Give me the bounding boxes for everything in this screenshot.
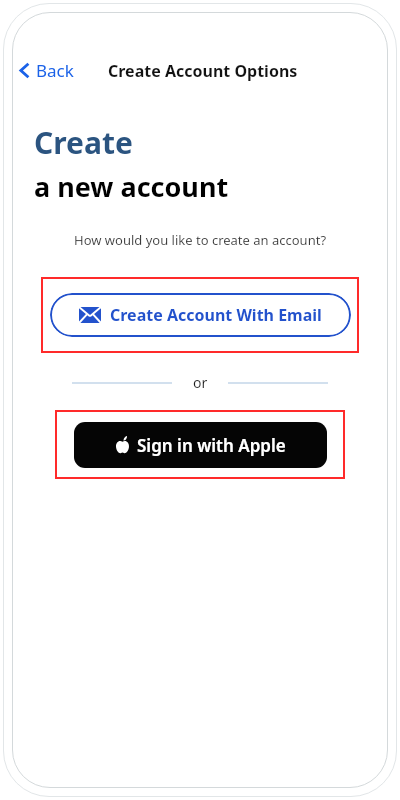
- staticText: or: [193, 373, 208, 392]
- other: Apple: [115, 436, 130, 454]
- staticText: Create Account With Email: [110, 304, 322, 326]
- button[interactable]: Apple: [74, 422, 327, 468]
- button[interactable]: Email: [50, 293, 351, 337]
- staticText: Back: [36, 59, 74, 82]
- staticText: a new account: [34, 168, 229, 205]
- other: Email: [79, 307, 101, 323]
- staticText: Sign in with Apple: [137, 434, 286, 457]
- button[interactable]: Back: [16, 55, 76, 86]
- staticText: Create: [34, 122, 133, 163]
- staticText: Create Account Options: [108, 60, 298, 82]
- staticText: How would you like to create an account?: [74, 231, 327, 249]
